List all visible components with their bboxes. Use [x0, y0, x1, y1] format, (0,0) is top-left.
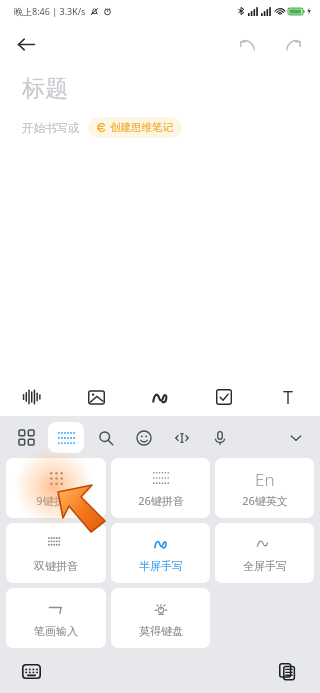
button[interactable]: Checklist [192, 378, 256, 416]
button[interactable]: Emoji [128, 422, 160, 453]
button[interactable]: Switch keyboard [18, 658, 44, 684]
button[interactable]: Apps [10, 422, 42, 453]
staticText: 半屏手写 [139, 559, 183, 573]
staticText: 标题 [22, 74, 68, 103]
staticText: 26键拼音 [138, 493, 184, 508]
staticText: 全屏手写 [243, 559, 287, 573]
button[interactable]: 半屏手写 [111, 523, 210, 583]
staticText: 开始书写或 [22, 121, 80, 135]
button[interactable]: Voice input [204, 422, 236, 453]
button[interactable]: 创建思维笔记 [88, 117, 182, 138]
staticText: T [283, 385, 294, 410]
button[interactable]: Clipboard [274, 658, 300, 684]
button[interactable]: Image [64, 378, 128, 416]
button[interactable]: 莫得键盘 [111, 588, 210, 648]
button[interactable]: Cursor [166, 422, 198, 453]
button[interactable]: Back [8, 26, 44, 62]
staticText: 双键拼音 [34, 559, 78, 573]
staticText: 创建思维笔记 [110, 121, 173, 134]
staticText: En [255, 468, 275, 488]
staticText: 9键拼音 [36, 493, 76, 508]
button[interactable]: 笔画输入 [6, 588, 106, 648]
staticText: 笔画输入 [34, 624, 78, 638]
staticText: 26键英文 [242, 493, 288, 508]
button[interactable]: Keyboard [48, 422, 84, 453]
button[interactable]: 双键拼音 [6, 523, 106, 583]
button[interactable]: 9键拼音 [6, 458, 106, 518]
button[interactable]: Collapse [280, 422, 312, 453]
button[interactable]: Voice [0, 378, 64, 416]
staticText: 晚上8:46 | 3.3K/s [14, 5, 86, 17]
button[interactable]: Search [90, 422, 122, 453]
button[interactable]: 26键拼音 [111, 458, 210, 518]
button[interactable]: Text format [256, 378, 320, 416]
button[interactable]: Handwriting [128, 378, 192, 416]
button[interactable]: Redo [276, 27, 310, 61]
staticText: 莫得键盘 [139, 624, 183, 638]
button[interactable]: En [215, 458, 314, 518]
button[interactable]: 全屏手写 [215, 523, 314, 583]
button[interactable]: Undo [230, 27, 264, 61]
